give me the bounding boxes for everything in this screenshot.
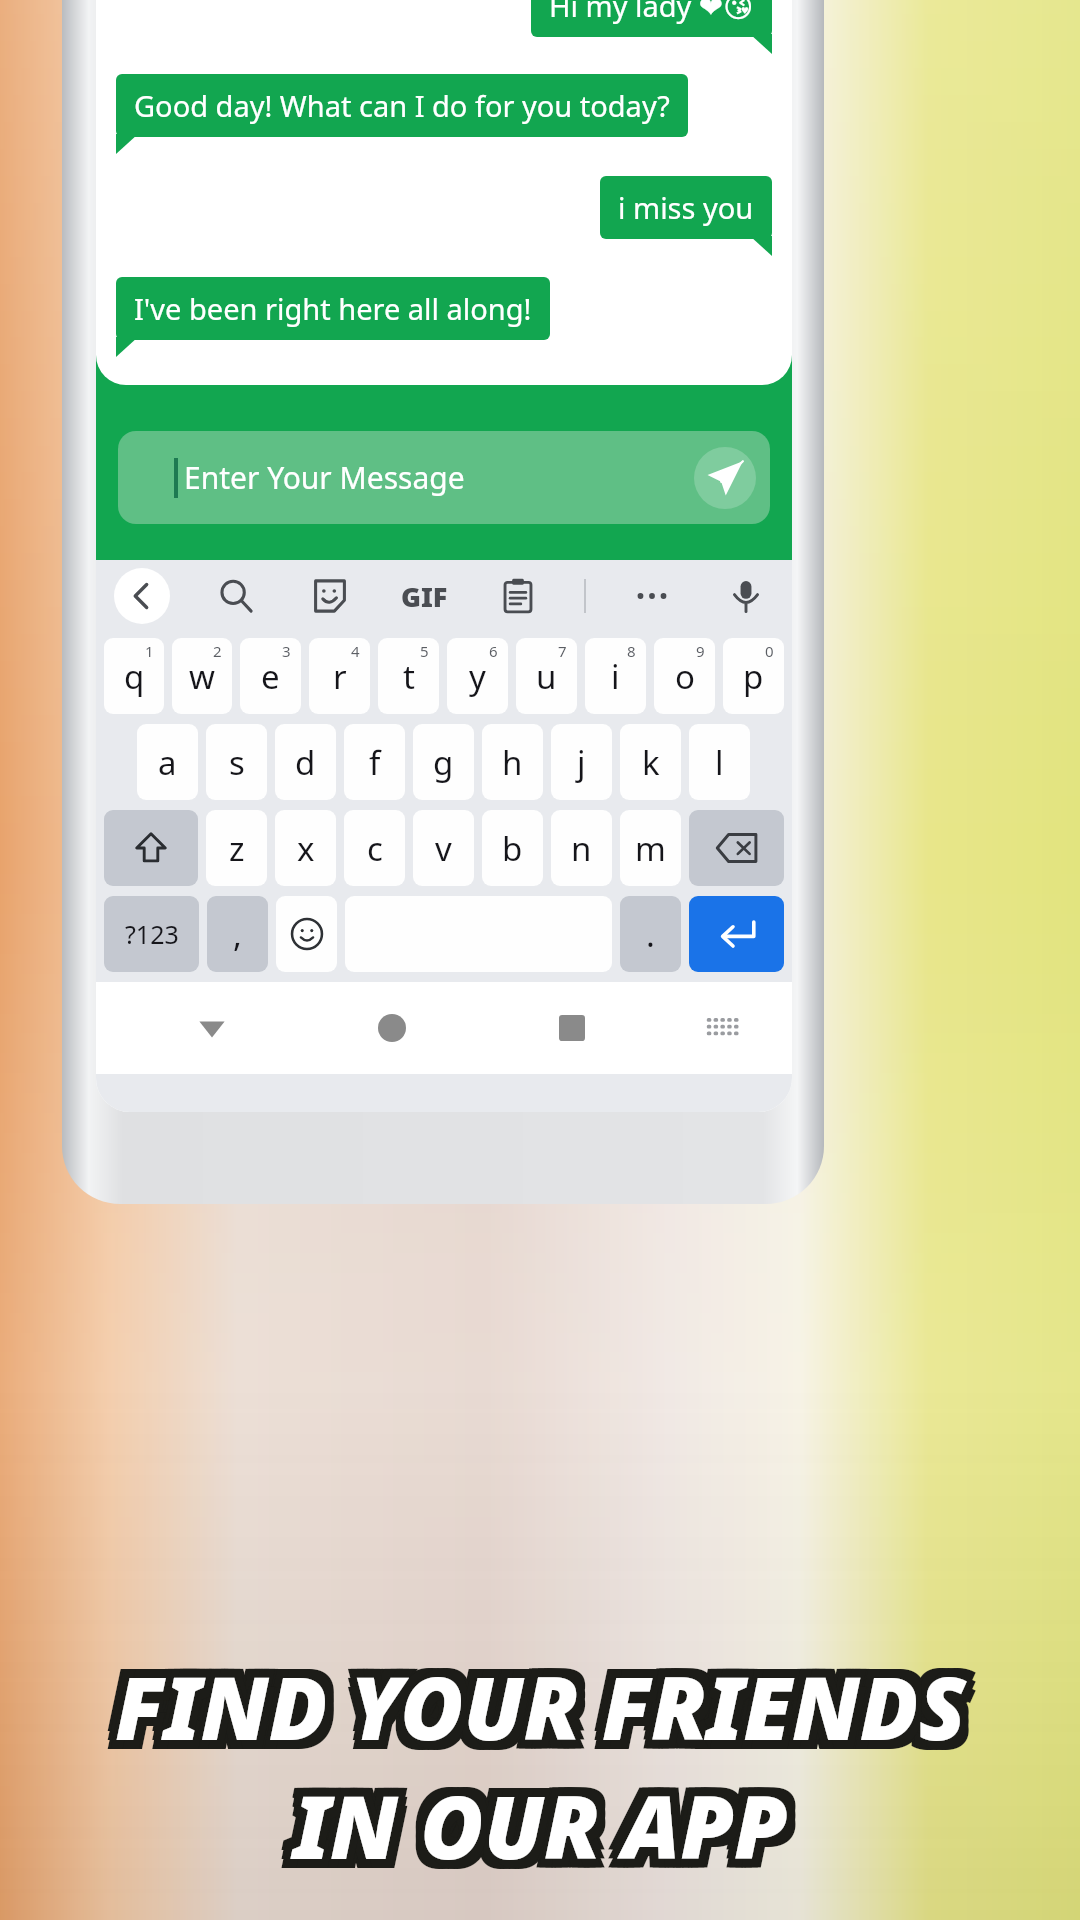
button[interactable]: . — [620, 896, 681, 972]
button[interactable]: v — [413, 810, 474, 886]
button[interactable]: i miss you — [600, 176, 772, 239]
button[interactable]: d — [275, 724, 336, 800]
button[interactable]: w — [172, 638, 232, 714]
button[interactable]: m — [620, 810, 681, 886]
staticText: p — [743, 654, 764, 699]
staticText: IN OUR APP — [287, 1758, 782, 1875]
staticText: IN OUR APP — [302, 1758, 797, 1875]
button[interactable]: Good day! What can I do for you today? — [116, 74, 688, 137]
staticText: k — [642, 740, 660, 785]
button[interactable]: Enter — [689, 896, 784, 972]
button[interactable]: q — [104, 638, 164, 714]
staticText: IN OUR APP — [287, 1776, 782, 1893]
staticText: FIND YOUR FRIENDS — [124, 1648, 975, 1765]
staticText: 9 — [696, 641, 705, 661]
button[interactable]: r — [309, 638, 370, 714]
button[interactable]: Emoji — [276, 896, 337, 972]
staticText: t — [403, 654, 415, 699]
staticText: IN OUR APP — [284, 1776, 779, 1893]
staticText: FIND YOUR FRIENDS — [106, 1639, 957, 1756]
button[interactable]: I've been right here all along! — [116, 277, 550, 340]
staticText: . — [646, 912, 655, 957]
staticText: I've been right here all along! — [134, 289, 532, 328]
staticText: IN OUR APP — [284, 1758, 779, 1875]
button[interactable]: p — [723, 638, 784, 714]
button[interactable]: Backspace — [689, 810, 784, 886]
staticText: IN OUR APP — [293, 1758, 788, 1875]
staticText: r — [333, 654, 347, 699]
button[interactable]: Shift — [104, 810, 198, 886]
button[interactable]: x — [275, 810, 336, 886]
button[interactable]: e — [240, 638, 301, 714]
staticText: FIND YOUR FRIENDS — [115, 1657, 966, 1774]
button[interactable]: Hide keyboard — [695, 1000, 751, 1056]
button[interactable]: f — [344, 724, 405, 800]
button[interactable]: Stickers — [302, 568, 358, 624]
staticText: 1 — [145, 641, 154, 661]
staticText: s — [229, 740, 245, 785]
staticText: FIND YOUR FRIENDS — [124, 1639, 975, 1756]
staticText: d — [295, 740, 316, 785]
button[interactable]: Send — [694, 447, 756, 509]
staticText: j — [577, 740, 586, 785]
staticText: 7 — [558, 641, 567, 661]
staticText: IN OUR APP — [299, 1758, 794, 1875]
staticText: , — [233, 912, 242, 957]
staticText: h — [502, 740, 523, 785]
button[interactable]: i — [585, 638, 646, 714]
button[interactable]: t — [378, 638, 439, 714]
button[interactable]: ?123 — [104, 896, 199, 972]
button[interactable]: u — [516, 638, 577, 714]
button[interactable]: z — [206, 810, 267, 886]
button[interactable]: j — [551, 724, 612, 800]
button[interactable]: y — [447, 638, 508, 714]
staticText: a — [158, 740, 177, 785]
button[interactable]: s — [206, 724, 267, 800]
button[interactable]: o — [654, 638, 715, 714]
button[interactable]: b — [482, 810, 543, 886]
button[interactable]: c — [344, 810, 405, 886]
button[interactable]: a — [137, 724, 198, 800]
button[interactable]: Back — [114, 568, 170, 624]
button[interactable]: More options — [624, 568, 680, 624]
button[interactable]: Recents — [542, 998, 602, 1058]
button[interactable]: Voice input — [718, 568, 774, 624]
other: Backspace — [716, 827, 758, 869]
button[interactable]: GIF — [396, 568, 452, 624]
button[interactable]: Enter Your Message — [118, 431, 770, 524]
staticText: f — [369, 740, 381, 785]
staticText: y — [469, 654, 486, 699]
button[interactable]: n — [551, 810, 612, 886]
staticText: IN OUR APP — [302, 1767, 797, 1884]
staticText: e — [261, 654, 280, 699]
button[interactable]: l — [689, 724, 750, 800]
button[interactable]: Back — [182, 998, 242, 1058]
staticText: z — [229, 826, 245, 871]
staticText: n — [571, 826, 592, 871]
button[interactable]: Clipboard — [490, 568, 546, 624]
button[interactable]: h — [482, 724, 543, 800]
staticText: x — [297, 826, 315, 871]
button[interactable]: k — [620, 724, 681, 800]
staticText: c — [367, 826, 383, 871]
staticText: IN OUR APP — [284, 1767, 779, 1884]
staticText: i — [611, 654, 620, 699]
staticText: 3 — [282, 641, 291, 661]
button[interactable]: , — [207, 896, 268, 972]
staticText: b — [502, 826, 523, 871]
staticText: 4 — [351, 641, 360, 661]
staticText: ?123 — [125, 917, 179, 951]
button[interactable]: Home — [362, 998, 422, 1058]
other: Shift — [134, 831, 168, 865]
staticText: FIND YOUR FRIENDS — [124, 1657, 975, 1774]
staticText: m — [635, 826, 666, 871]
staticText: 0 — [765, 641, 774, 661]
button[interactable]: g — [413, 724, 474, 800]
button[interactable]: Hi my lady ❤️😘 — [531, 0, 772, 37]
button[interactable]: Search — [208, 568, 264, 624]
staticText: 6 — [489, 641, 498, 661]
staticText: l — [715, 740, 724, 785]
staticText: i miss you — [618, 188, 754, 227]
staticText: Enter Your Message — [184, 457, 694, 498]
